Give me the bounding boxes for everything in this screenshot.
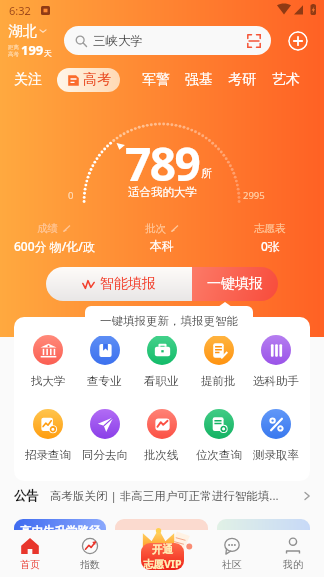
button[interactable]: 我的 bbox=[269, 531, 317, 576]
button[interactable]: 同分去向 bbox=[76, 409, 133, 462]
staticText: 湖北 bbox=[8, 22, 37, 40]
button[interactable]: 三峡大学 bbox=[64, 26, 271, 55]
staticText: 0 bbox=[68, 189, 74, 202]
button[interactable]: 考研 bbox=[228, 71, 256, 89]
staticText: 智能填报 bbox=[100, 275, 156, 293]
staticText: 社区 bbox=[222, 558, 242, 571]
button[interactable]: 找大学 bbox=[20, 335, 76, 388]
staticText: 789 bbox=[125, 132, 200, 186]
button[interactable]: 测录取率 bbox=[247, 409, 304, 462]
button[interactable]: 选科助手 bbox=[247, 335, 304, 388]
button[interactable]: 看职业 bbox=[133, 335, 190, 388]
staticText: 0张 bbox=[261, 238, 280, 254]
button[interactable]: 成绩 bbox=[0, 222, 108, 256]
staticText: 所 bbox=[201, 166, 212, 180]
button[interactable]: 指数 bbox=[66, 531, 114, 576]
staticText: 距离 bbox=[8, 44, 19, 51]
button[interactable]: 公告 bbox=[14, 484, 312, 508]
staticText: 批次 bbox=[145, 222, 166, 235]
staticText: 看职业 bbox=[144, 374, 179, 388]
staticText: 适合我的大学 bbox=[128, 185, 197, 199]
staticText: 志愿VIP bbox=[143, 557, 182, 570]
staticText: 成绩 bbox=[37, 222, 58, 235]
staticText: 2995 bbox=[243, 189, 265, 202]
staticText: 提前批 bbox=[201, 374, 236, 388]
staticText: 三峡大学 bbox=[93, 33, 143, 49]
button[interactable]: 关注 bbox=[14, 71, 42, 89]
staticText: 批次线 bbox=[144, 448, 179, 462]
button[interactable]: 军警 bbox=[142, 71, 170, 89]
staticText: 查专业 bbox=[87, 374, 122, 388]
button[interactable]: 批次线 bbox=[133, 409, 190, 462]
staticText: 招录查询 bbox=[25, 448, 71, 462]
staticText: 我的 bbox=[283, 558, 303, 571]
button[interactable]: 招录查询 bbox=[20, 409, 76, 462]
staticText: 199 bbox=[21, 41, 44, 59]
other: Scan code bbox=[247, 34, 261, 48]
staticText: 一键填报更新，填报更智能 bbox=[100, 314, 238, 328]
button[interactable]: 开通 bbox=[138, 528, 192, 572]
button[interactable] bbox=[115, 519, 208, 577]
staticText: 测录取率 bbox=[253, 448, 299, 462]
button[interactable]: 高中生升学路径 bbox=[14, 519, 106, 577]
button[interactable]: 社区 bbox=[208, 531, 256, 576]
staticText: 600分 物/化/政 bbox=[14, 238, 95, 254]
button[interactable]: Add bbox=[288, 31, 308, 51]
staticText: 找大学 bbox=[31, 374, 66, 388]
staticText: 公告 bbox=[14, 488, 39, 504]
button[interactable]: 湖北 bbox=[8, 22, 64, 59]
button[interactable]: 一键填报 bbox=[192, 267, 278, 301]
staticText: 首页 bbox=[20, 558, 40, 571]
button[interactable]: 首页 bbox=[6, 531, 54, 576]
button[interactable]: 一键填报更新，填报更智能 bbox=[85, 306, 253, 336]
staticText: 本科 bbox=[150, 238, 174, 253]
staticText: 高考版关闭 | 非高三用户可正常进行智能填... bbox=[50, 488, 279, 504]
button[interactable]: 志愿表 bbox=[216, 222, 324, 256]
button[interactable]: 查专业 bbox=[76, 335, 133, 388]
staticText: 高中生升学路径 bbox=[20, 524, 101, 538]
staticText: 天 bbox=[44, 48, 52, 58]
staticText: 志愿表 bbox=[254, 222, 286, 235]
button[interactable]: 位次查询 bbox=[190, 409, 247, 462]
staticText: 开通 bbox=[152, 543, 173, 556]
staticText: 6:32 bbox=[9, 3, 31, 18]
button[interactable]: 高考 bbox=[57, 68, 120, 92]
button[interactable]: 提前批 bbox=[190, 335, 247, 388]
staticText: 高考 bbox=[83, 71, 111, 89]
staticText: 同分去向 bbox=[82, 448, 128, 462]
staticText: 选科助手 bbox=[253, 374, 299, 388]
staticText: 高考 bbox=[8, 51, 19, 58]
staticText: 指数 bbox=[80, 558, 100, 571]
button[interactable]: 强基 bbox=[185, 71, 213, 89]
button[interactable]: 艺术 bbox=[272, 71, 300, 89]
button[interactable]: 智能填报 bbox=[46, 267, 192, 301]
staticText: 一键填报 bbox=[207, 275, 263, 293]
button[interactable] bbox=[217, 519, 310, 577]
button[interactable]: 批次 bbox=[108, 222, 216, 256]
staticText: 位次查询 bbox=[196, 448, 242, 462]
